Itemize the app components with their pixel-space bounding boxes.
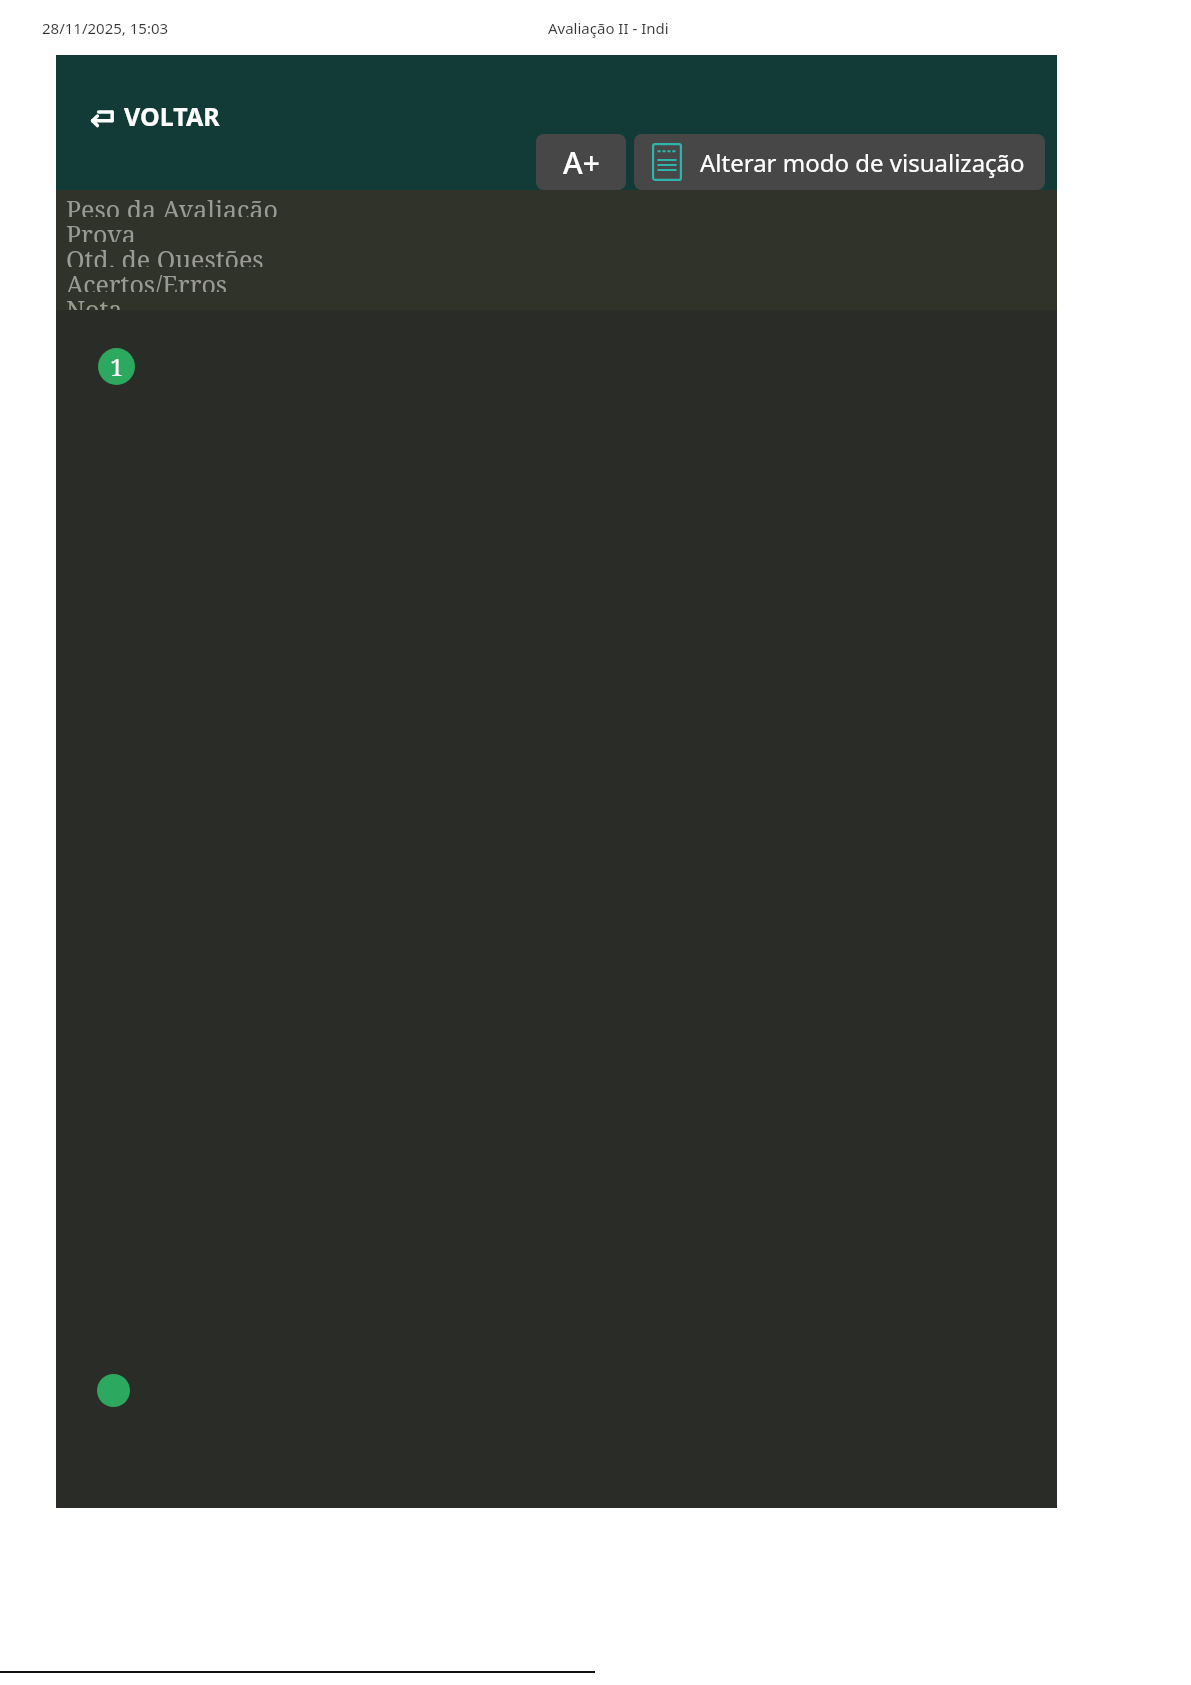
staticText: 28/11/2025, 15:03 <box>42 18 169 38</box>
staticText: A+ <box>563 142 600 183</box>
staticText: Acertos/Erros <box>66 267 228 292</box>
staticText: Peso da Avaliação <box>66 192 278 217</box>
staticText: 1 <box>110 350 124 383</box>
button[interactable]: VOLTAR <box>82 95 224 137</box>
staticText: Nota <box>66 292 123 310</box>
staticText: Qtd. de Questões <box>66 242 264 267</box>
button[interactable]: Status <box>97 1374 130 1407</box>
staticText: Avaliação II - Indi <box>548 18 669 38</box>
button[interactable]: Alterar modo de visualização <box>634 134 1045 190</box>
staticText: Prova <box>66 217 136 242</box>
button[interactable]: 1 <box>98 348 135 385</box>
button[interactable]: A+ <box>536 134 626 190</box>
staticText: VOLTAR <box>124 99 220 133</box>
staticText: Alterar modo de visualização <box>700 146 1025 179</box>
